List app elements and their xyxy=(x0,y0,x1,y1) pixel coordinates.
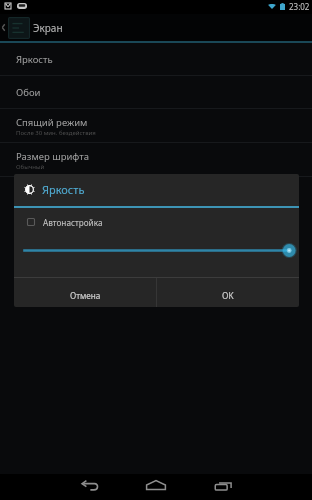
button[interactable]: Спящий режим xyxy=(0,109,312,142)
button[interactable]: OK xyxy=(157,278,299,307)
staticText: Спящий режим xyxy=(16,116,88,129)
button[interactable]: Отмена xyxy=(14,278,156,307)
staticText: Обои xyxy=(16,86,41,99)
staticText: Автонастройка xyxy=(43,217,103,228)
button[interactable]: Автонастройка xyxy=(14,214,299,230)
staticText: После 30 мин. бездействия xyxy=(16,129,96,137)
button[interactable]: Back xyxy=(73,472,107,498)
staticText: Размер шрифта xyxy=(16,150,89,163)
button[interactable]: Home xyxy=(139,472,173,498)
staticText: OK xyxy=(222,290,234,301)
staticText: Обычный xyxy=(16,163,45,171)
button[interactable]: Recent apps xyxy=(206,472,240,498)
button[interactable]: Обои xyxy=(0,76,312,108)
staticText: Экран xyxy=(33,21,63,35)
staticText: Яркость xyxy=(16,53,53,66)
button[interactable]: Navigate up xyxy=(0,14,312,41)
staticText: Яркость xyxy=(42,182,85,197)
staticText: 23:02 xyxy=(289,1,310,12)
staticText: Отмена xyxy=(70,290,101,301)
button[interactable]: Размер шрифта xyxy=(0,143,312,176)
button[interactable]: Яркость xyxy=(0,43,312,75)
